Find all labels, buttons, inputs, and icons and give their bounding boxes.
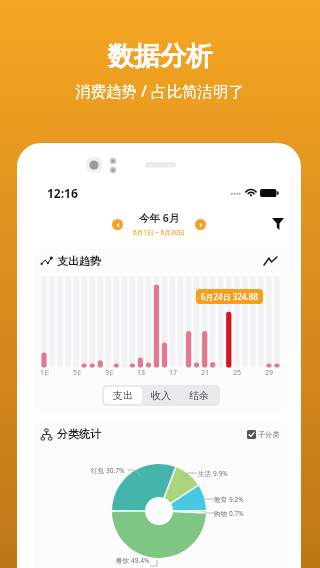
- button[interactable]: Filter: [266, 212, 290, 236]
- staticText: 17日: [169, 368, 177, 378]
- staticText: 购物 0.7%: [214, 509, 244, 518]
- staticText: 分类统计: [57, 427, 101, 441]
- staticText: 1日: [40, 368, 49, 378]
- staticText: 29日: [265, 368, 273, 378]
- button[interactable]: 结余: [180, 387, 218, 404]
- staticText: 收入: [151, 389, 171, 402]
- button[interactable]: Next month: [195, 219, 206, 230]
- staticText: 21日: [201, 368, 209, 378]
- button[interactable]: 子分类: [247, 430, 280, 439]
- staticText: 今年 6月: [139, 211, 180, 225]
- staticText: 25日: [233, 368, 241, 378]
- staticText: 子分类: [258, 430, 280, 439]
- staticText: 12:16: [47, 185, 78, 201]
- button[interactable]: 收入: [142, 387, 180, 404]
- button[interactable]: 今年 6月: [133, 211, 185, 237]
- staticText: 支出趋势: [57, 254, 101, 268]
- button[interactable]: 支出: [104, 387, 142, 404]
- staticText: 红包 30.7%: [91, 466, 125, 475]
- staticText: 生活 9.9%: [198, 469, 228, 478]
- staticText: 结余: [189, 389, 209, 402]
- staticText: 支出: [113, 389, 133, 402]
- staticText: 数据分析: [108, 40, 212, 73]
- staticText: 5日: [73, 368, 81, 378]
- staticText: 6月1日 ~ 6月30日: [133, 228, 185, 237]
- staticText: 13日: [137, 368, 145, 378]
- staticText: 教育 9.2%: [214, 495, 244, 504]
- button[interactable]: Previous month: [112, 219, 123, 230]
- staticText: 消费趋势 / 占比简洁明了: [75, 80, 245, 101]
- staticText: 餐饮 49.4%: [116, 556, 150, 565]
- staticText: 6月24日 324.88: [201, 291, 258, 302]
- staticText: 9日: [105, 368, 113, 378]
- button[interactable]: Switch to line chart: [260, 251, 280, 271]
